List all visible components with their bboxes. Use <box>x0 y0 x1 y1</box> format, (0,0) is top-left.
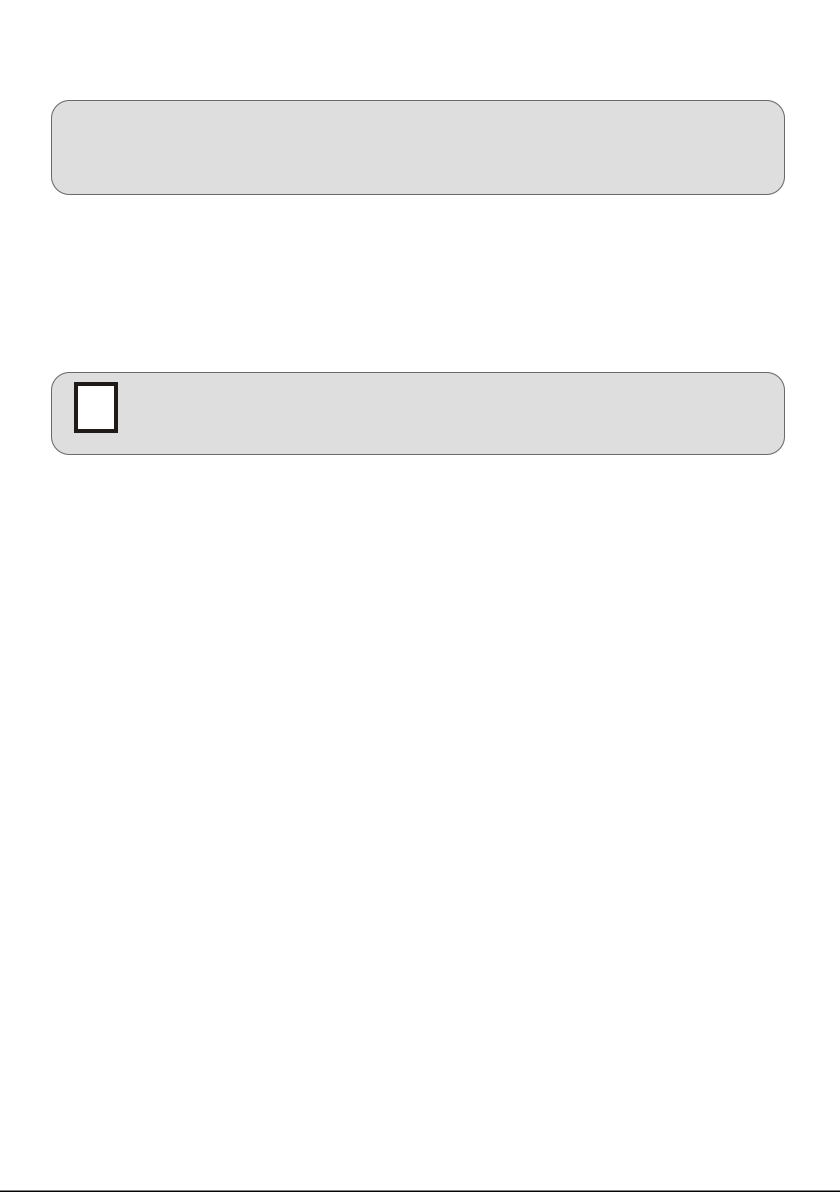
button[interactable]: Banner <box>51 100 785 195</box>
button[interactable]: Item <box>51 372 785 455</box>
